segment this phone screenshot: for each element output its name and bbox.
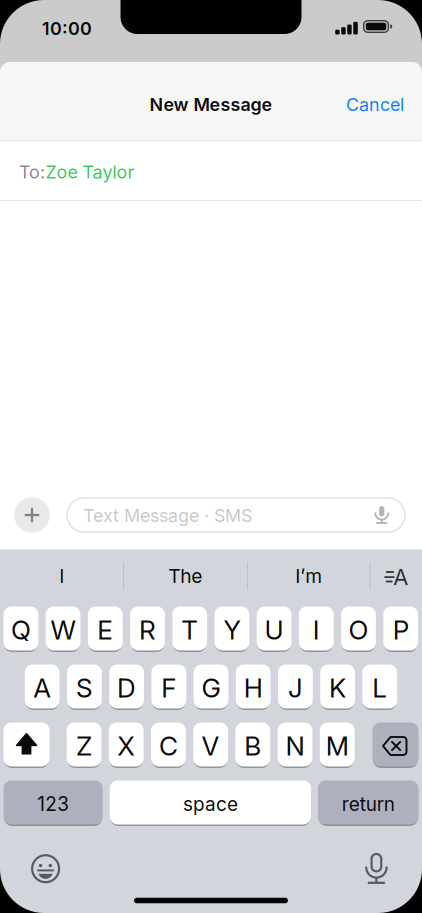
button[interactable]: Z [67, 722, 101, 766]
button[interactable]: V [193, 722, 228, 766]
staticText: L [372, 672, 387, 704]
staticText: Text Message · SMS [83, 505, 252, 526]
button[interactable]: U [257, 606, 291, 650]
staticText: S [76, 672, 93, 704]
button[interactable]: I [1, 554, 123, 598]
button[interactable]: Y [214, 606, 249, 650]
button[interactable]: P [383, 606, 418, 650]
staticText: A [33, 672, 51, 704]
button[interactable]: Dictation [359, 852, 393, 886]
button[interactable]: G [194, 664, 228, 708]
button[interactable]: M [320, 722, 355, 766]
staticText: N [285, 730, 304, 762]
staticText: Cancel [346, 94, 404, 115]
staticText: G [201, 672, 220, 704]
staticText: Zoe Taylor [45, 161, 134, 183]
button[interactable]: W [46, 606, 80, 650]
button[interactable]: Q [3, 606, 38, 650]
staticText: I [59, 564, 64, 588]
staticText: space [183, 792, 238, 815]
staticText: Z [76, 730, 92, 762]
button[interactable]: Text Message field [66, 497, 406, 533]
button[interactable]: E [88, 606, 123, 650]
button[interactable]: K [320, 664, 355, 708]
button[interactable]: I’m [248, 554, 370, 598]
button[interactable]: A [25, 664, 60, 708]
button[interactable]: The [124, 554, 246, 598]
staticText: D [117, 672, 136, 704]
button[interactable]: I [299, 606, 334, 650]
staticText: 123 [37, 792, 69, 815]
button[interactable]: Cancel [346, 94, 404, 115]
staticText: B [244, 730, 261, 762]
button[interactable]: Predictive typing [384, 568, 407, 586]
button[interactable]: N [278, 722, 312, 766]
staticText: T [181, 614, 198, 646]
button[interactable]: 123 [3, 780, 103, 824]
staticText: Q [11, 614, 31, 646]
staticText: I’m [295, 564, 322, 588]
button[interactable]: H [236, 664, 271, 708]
staticText: J [288, 672, 303, 704]
staticText: O [348, 614, 368, 646]
button[interactable]: O [341, 606, 376, 650]
button[interactable]: To: Zoe Taylor [0, 141, 422, 200]
staticText: M [326, 730, 349, 762]
button[interactable]: Emoji [31, 854, 60, 883]
button[interactable]: F [151, 664, 186, 708]
staticText: C [159, 730, 178, 762]
staticText: W [51, 614, 76, 646]
staticText: P [393, 614, 409, 646]
button[interactable]: J [278, 664, 313, 708]
button[interactable]: L [362, 664, 397, 708]
button[interactable]: S [67, 664, 102, 708]
staticText: V [202, 730, 220, 762]
staticText: F [161, 672, 176, 704]
button[interactable]: T [172, 606, 207, 650]
button[interactable]: D [109, 664, 144, 708]
staticText: Y [223, 614, 240, 646]
staticText: H [244, 672, 263, 704]
staticText: U [265, 614, 284, 646]
button[interactable]: space [110, 780, 311, 824]
button[interactable]: Shift [3, 722, 49, 766]
staticText: I [313, 614, 320, 646]
button[interactable]: Add attachment [14, 497, 50, 533]
staticText: The [168, 564, 202, 588]
button[interactable]: Delete [372, 722, 418, 766]
staticText: 10:00 [42, 18, 92, 39]
button[interactable]: B [235, 722, 270, 766]
button[interactable]: return [318, 780, 418, 824]
staticText: To: [19, 161, 45, 183]
button[interactable]: C [151, 722, 186, 766]
staticText: K [329, 672, 346, 704]
button[interactable]: R [130, 606, 165, 650]
staticText: return [342, 792, 395, 815]
button[interactable]: X [109, 722, 144, 766]
staticText: E [97, 614, 113, 646]
staticText: A [393, 564, 408, 590]
staticText: X [117, 730, 135, 762]
staticText: R [139, 614, 156, 646]
staticText: New Message [149, 94, 272, 115]
